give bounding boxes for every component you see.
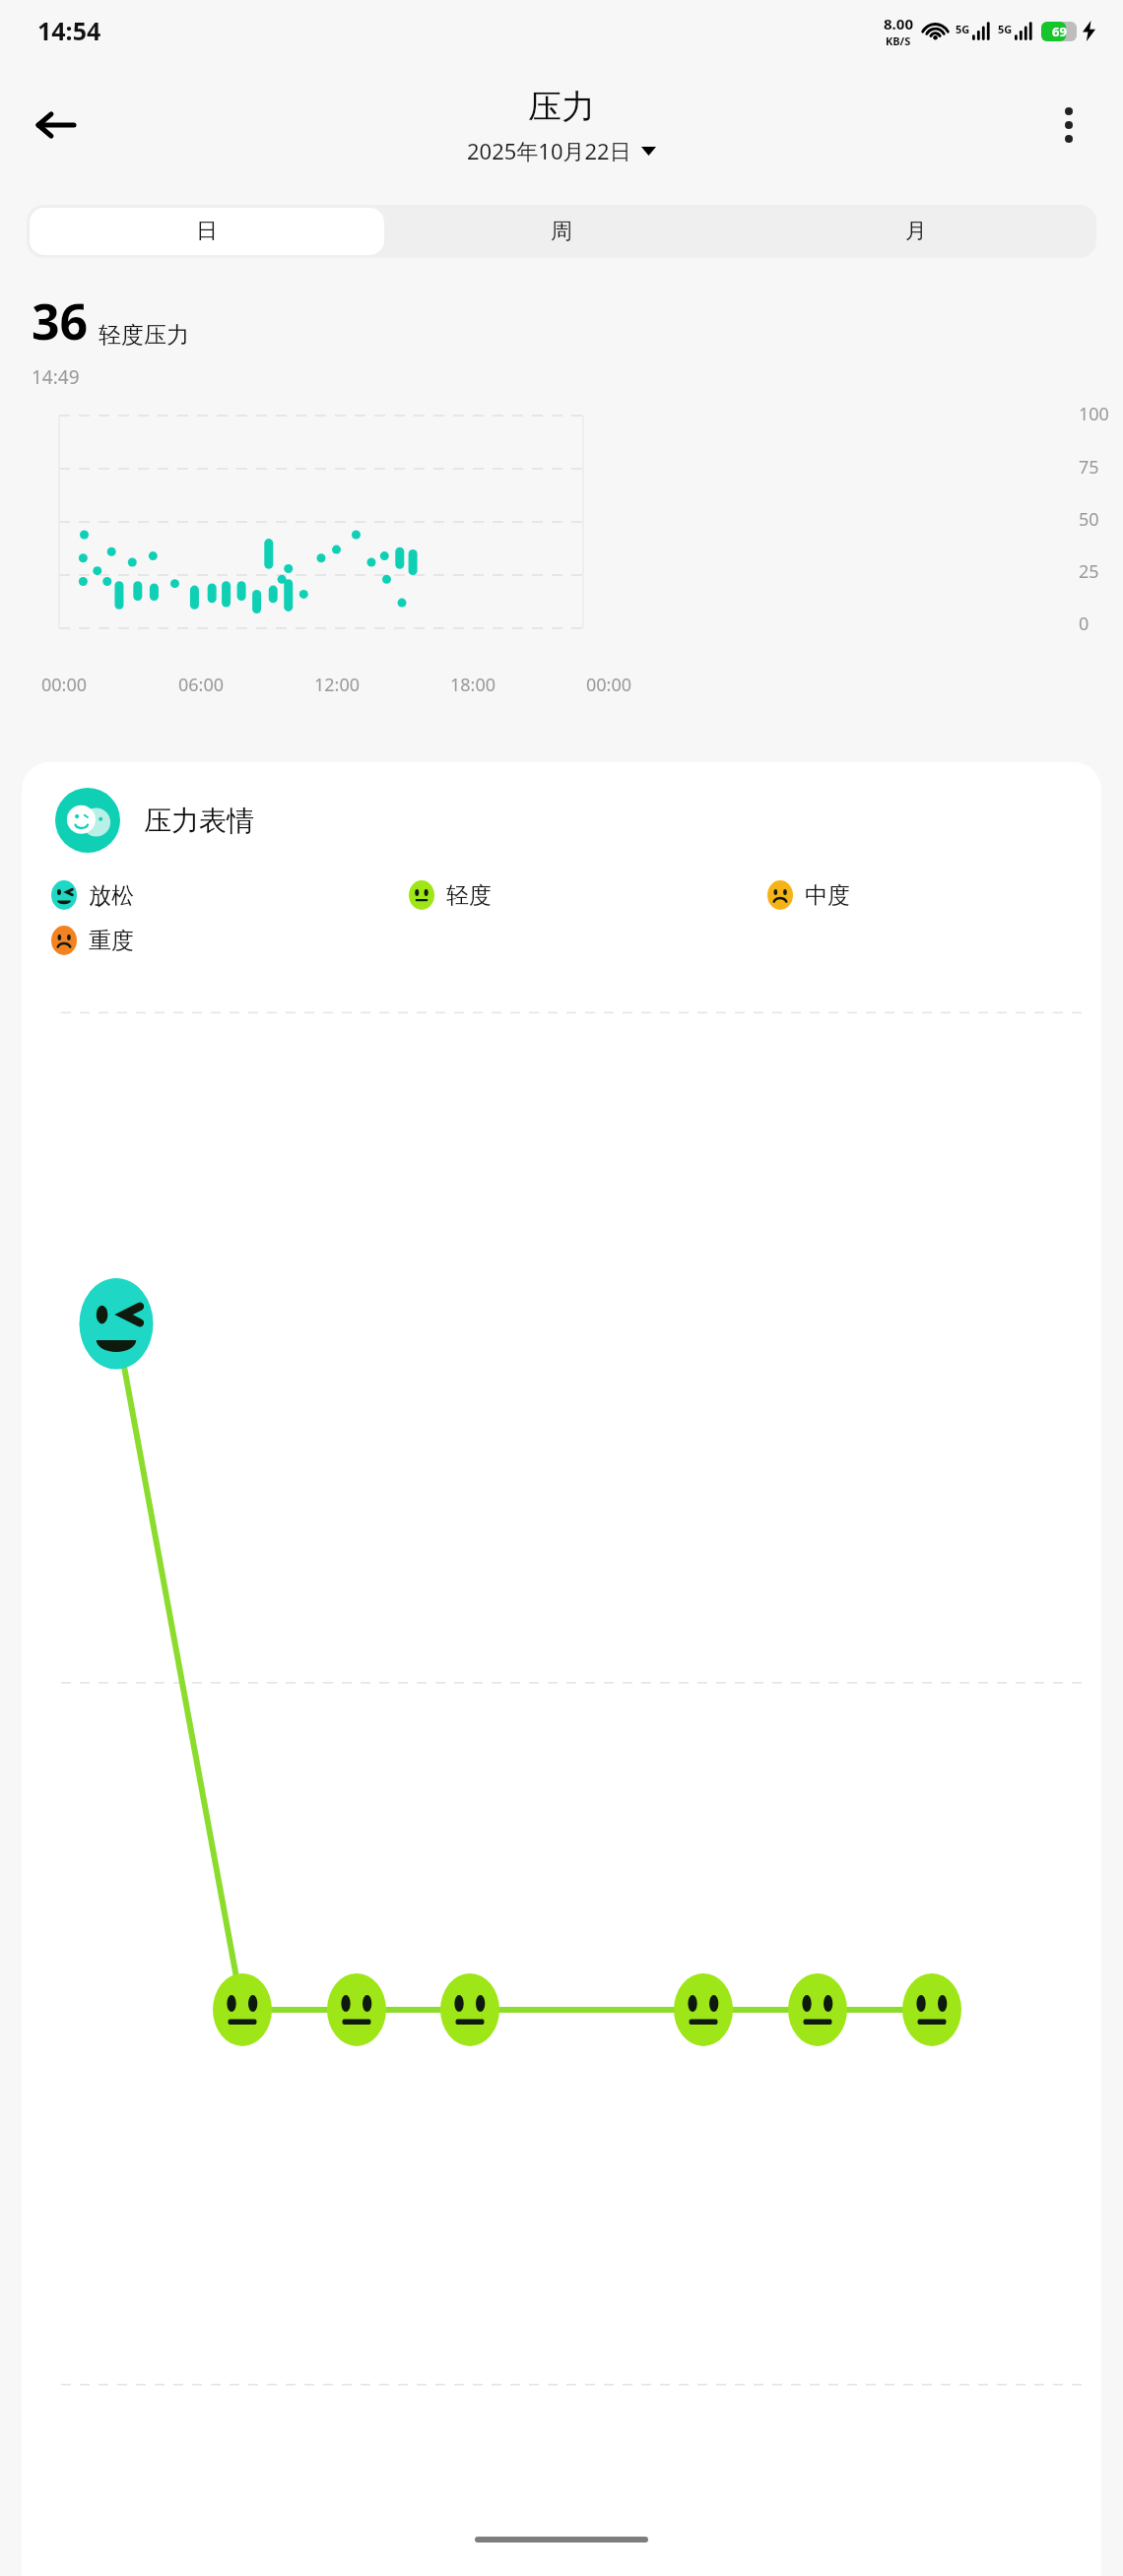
staticText: 69 — [1052, 23, 1067, 40]
staticText: 压力 — [528, 86, 595, 128]
staticText: 06:00 — [178, 673, 314, 697]
staticText: 00:00 — [586, 673, 632, 697]
staticText: 周 — [551, 218, 572, 245]
button[interactable]: 重度 — [51, 926, 134, 955]
staticText: 日 — [196, 218, 218, 245]
staticText: 放松 — [89, 881, 134, 910]
button[interactable]: 周 — [384, 208, 739, 255]
staticText: 5G — [956, 22, 970, 36]
staticText: 50 — [1079, 507, 1099, 532]
button[interactable]: 轻度 — [409, 880, 767, 910]
button[interactable]: 日 — [30, 208, 384, 255]
button[interactable]: Back — [22, 91, 91, 160]
staticText: 00:00 — [41, 673, 178, 697]
staticText: 5G — [998, 22, 1013, 36]
button[interactable]: More options — [1038, 95, 1099, 156]
staticText: 75 — [1079, 455, 1099, 480]
staticText: 中度 — [805, 881, 850, 910]
button[interactable]: 压力表情 — [55, 788, 254, 853]
staticText: 0 — [1079, 612, 1090, 636]
staticText: 18:00 — [450, 673, 586, 697]
staticText: 月 — [905, 218, 927, 245]
staticText: 14:54 — [37, 14, 101, 47]
staticText: 压力表情 — [144, 804, 254, 838]
button[interactable]: 放松 — [51, 880, 409, 910]
staticText: 25 — [1079, 559, 1099, 584]
staticText: 2025年10月22日 — [467, 136, 631, 165]
staticText: 轻度 — [446, 881, 492, 910]
button[interactable]: 月 — [739, 208, 1093, 255]
staticText: 100 — [1079, 402, 1109, 426]
staticText: 8.00 — [884, 14, 913, 33]
button[interactable]: 压力 — [467, 86, 656, 165]
staticText: 重度 — [89, 927, 134, 955]
staticText: 36 — [32, 288, 89, 354]
staticText: 14:49 — [32, 364, 80, 390]
staticText: KB/S — [886, 33, 911, 48]
staticText: 轻度压力 — [99, 321, 189, 350]
staticText: 12:00 — [314, 673, 450, 697]
button[interactable]: 中度 — [767, 880, 1076, 910]
